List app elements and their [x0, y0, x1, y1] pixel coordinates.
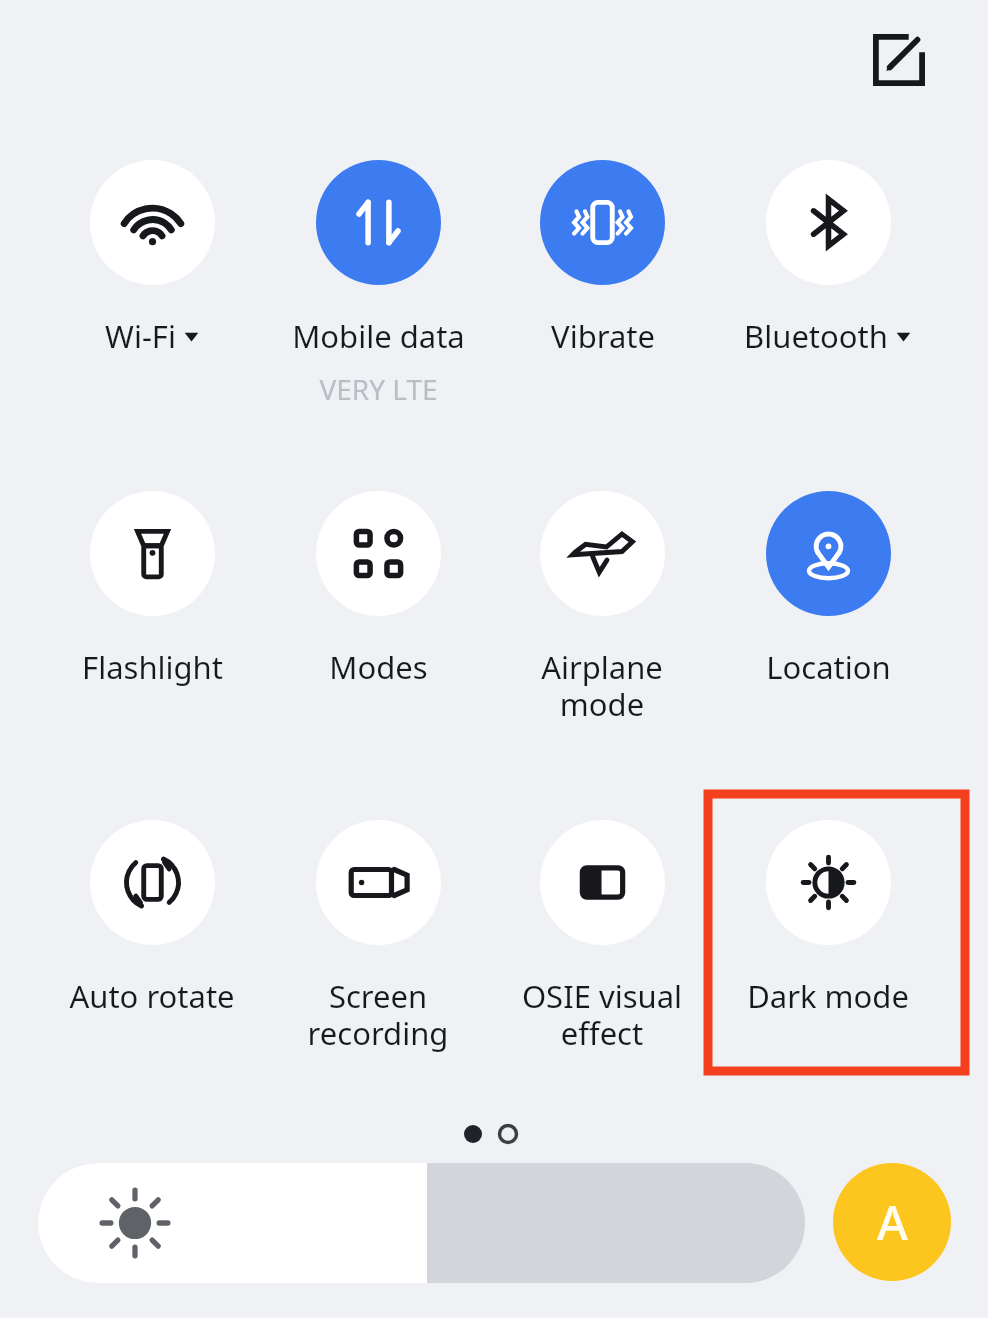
button[interactable]: Airplane mode	[489, 471, 715, 751]
staticText: OSIE visual effect	[504, 975, 700, 1054]
button[interactable]: Location	[715, 471, 941, 751]
staticText: A	[877, 1190, 908, 1254]
staticText: Dark mode	[747, 975, 909, 1017]
staticText: Modes	[329, 646, 428, 688]
button[interactable]: Dark mode	[715, 800, 941, 1080]
staticText: Screen recording	[280, 975, 476, 1054]
staticText: Bluetooth	[744, 315, 888, 357]
staticText: Vibrate	[551, 315, 655, 357]
staticText: Location	[766, 646, 891, 688]
button[interactable]: Flashlight	[39, 471, 265, 751]
staticText: Flashlight	[82, 646, 223, 688]
staticText: Auto rotate	[69, 975, 235, 1017]
button[interactable]: Screen recording	[265, 800, 491, 1080]
staticText: Airplane mode	[504, 646, 700, 725]
button[interactable]: Edit quick settings	[861, 22, 937, 98]
button[interactable]: Brightness	[38, 1163, 805, 1283]
button[interactable]: Wi-Fi	[39, 140, 265, 420]
button[interactable]: Modes	[265, 471, 491, 751]
button[interactable]: Mobile data	[265, 140, 491, 420]
staticText: Mobile data	[292, 315, 465, 357]
staticText: Wi-Fi	[105, 315, 176, 357]
button[interactable]: Vibrate	[489, 140, 715, 420]
staticText: VERY LTE	[319, 370, 438, 408]
button[interactable]: Bluetooth	[715, 140, 941, 420]
button[interactable]: Auto brightness	[833, 1163, 951, 1281]
button[interactable]: OSIE visual effect	[489, 800, 715, 1080]
button[interactable]: Auto rotate	[39, 800, 265, 1080]
